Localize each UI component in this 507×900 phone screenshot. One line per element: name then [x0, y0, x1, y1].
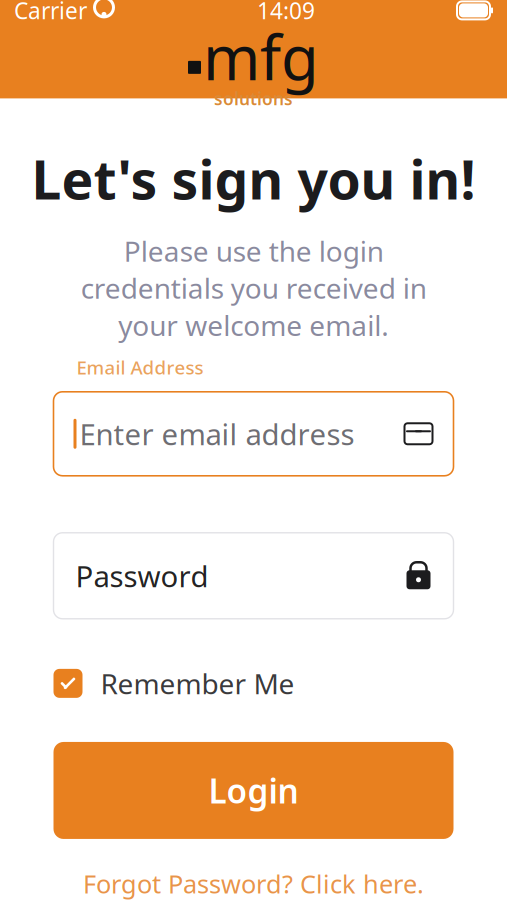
- staticText: Remember Me: [100, 665, 294, 702]
- button[interactable]: Password: [53, 533, 453, 619]
- staticText: Password: [75, 556, 208, 595]
- staticText: Enter email address: [79, 414, 354, 453]
- staticText: Email Address: [76, 355, 203, 380]
- button[interactable]: Remember Me: [53, 665, 294, 702]
- button[interactable]: Login: [53, 742, 453, 839]
- staticText: Please use the login credentials you rec…: [80, 232, 426, 344]
- staticText: Carrier: [14, 0, 87, 25]
- staticText: solutions: [214, 87, 293, 110]
- staticText: Login: [208, 768, 298, 813]
- staticText: 14:09: [257, 0, 315, 25]
- staticText: Forgot Password? Click here.: [83, 867, 424, 900]
- staticText: Let's sign you in!: [31, 143, 475, 214]
- staticText: mfg: [203, 16, 319, 97]
- button[interactable]: Forgot Password? Click here.: [73, 861, 434, 900]
- button[interactable]: Enter email address: [53, 392, 453, 476]
